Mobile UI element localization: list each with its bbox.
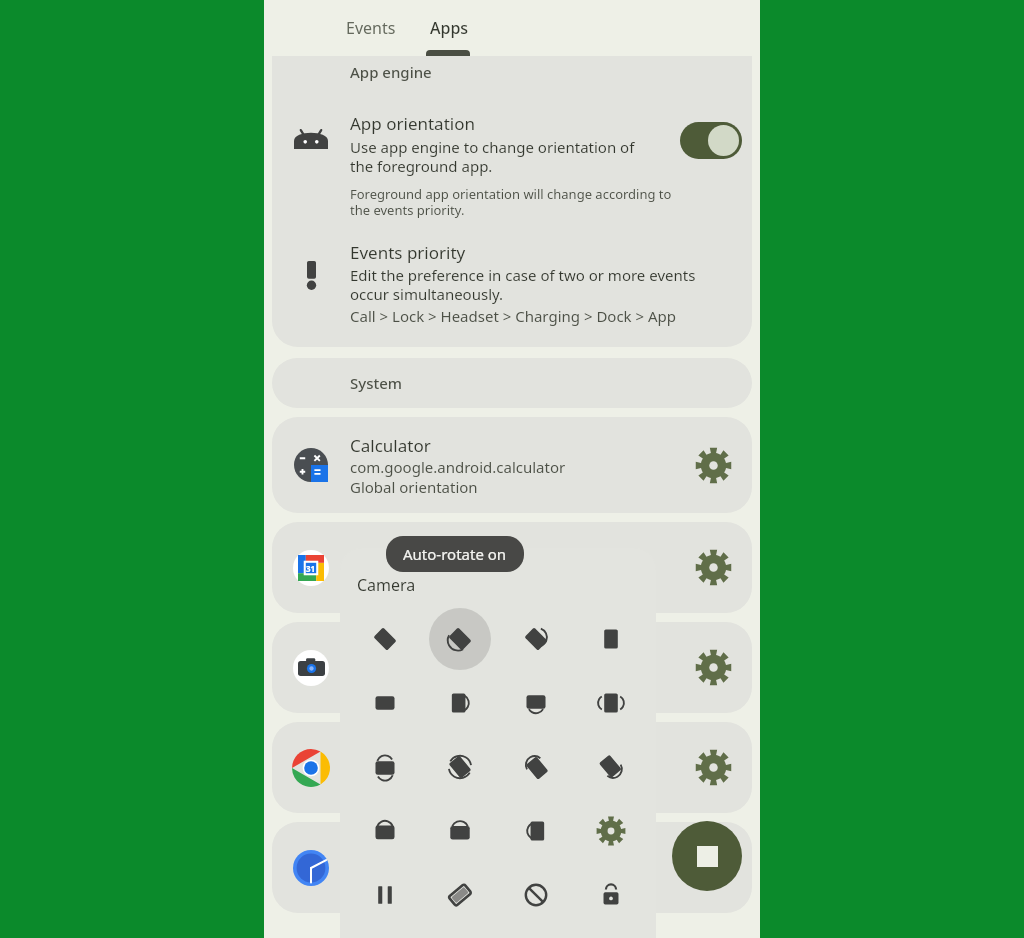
button[interactable]: Orientation option 8 <box>354 736 416 798</box>
button[interactable]: Orientation option 1 <box>429 608 491 670</box>
button[interactable]: Orientation option 14 <box>505 800 567 862</box>
button[interactable]: 31 <box>272 522 752 613</box>
button[interactable]: Settings for Clock <box>674 822 752 913</box>
staticText: Events <box>346 17 396 39</box>
button[interactable]: Orientation option 19 <box>580 864 642 926</box>
staticText: Call > Lock > Headset > Charging > Dock … <box>350 306 677 326</box>
button[interactable] <box>680 122 742 159</box>
button[interactable]: Calculator <box>272 417 752 513</box>
button[interactable]: Orientation option 9 <box>429 736 491 798</box>
staticText: Chrome <box>350 756 414 779</box>
button[interactable]: Orientation option 15 <box>580 800 642 862</box>
button[interactable]: Orientation option 10 <box>505 736 567 798</box>
staticText: Global orientation <box>350 477 478 497</box>
button[interactable]: Orientation option 16 <box>354 864 416 926</box>
button[interactable]: Orientation option 12 <box>354 800 416 862</box>
button[interactable]: Events priority <box>272 241 752 326</box>
button[interactable]: Settings for Chrome <box>674 722 752 813</box>
button[interactable]: Orientation option 7 <box>580 672 642 734</box>
staticText: Calendar <box>350 556 422 579</box>
staticText: App orientation <box>350 112 475 135</box>
button[interactable]: Orientation option 0 <box>354 608 416 670</box>
button[interactable]: Orientation option 5 <box>429 672 491 734</box>
button[interactable]: Chrome <box>272 722 752 813</box>
button[interactable]: System <box>272 358 752 408</box>
button[interactable]: Orientation option 11 <box>580 736 642 798</box>
button[interactable]: Orientation option 6 <box>505 672 567 734</box>
button[interactable]: App orientation <box>272 112 752 219</box>
button[interactable]: Apps <box>418 5 481 51</box>
staticText: Camera <box>357 574 416 596</box>
staticText: Edit the preference in case of two or mo… <box>350 265 696 304</box>
staticText: App engine <box>350 62 432 82</box>
button[interactable]: Camera <box>272 622 752 713</box>
button[interactable]: Orientation option 3 <box>580 608 642 670</box>
button[interactable]: Events <box>334 5 408 51</box>
button[interactable]: Stop <box>672 821 742 891</box>
staticText: com.google.android.calculator <box>350 457 566 477</box>
button[interactable]: Orientation option 4 <box>354 672 416 734</box>
button[interactable]: Settings for Calendar <box>674 522 752 613</box>
button[interactable]: Orientation option 2 <box>505 608 567 670</box>
button[interactable]: Clock <box>272 822 752 913</box>
button[interactable]: Settings for Calculator <box>674 417 752 513</box>
staticText: Use app engine to change orientation of … <box>350 137 635 176</box>
button[interactable]: Orientation option 17 <box>429 864 491 926</box>
staticText: Apps <box>430 17 469 39</box>
staticText: Auto-rotate on <box>403 544 507 564</box>
staticText: Foreground app orientation will change a… <box>350 185 672 219</box>
button[interactable]: Settings for Camera <box>674 622 752 713</box>
staticText: System <box>350 373 403 393</box>
staticText: Calculator <box>350 434 431 457</box>
button[interactable]: Orientation option 18 <box>505 864 567 926</box>
staticText: 31 <box>306 563 316 574</box>
staticText: Events priority <box>350 241 466 264</box>
button[interactable]: Orientation option 13 <box>429 800 491 862</box>
